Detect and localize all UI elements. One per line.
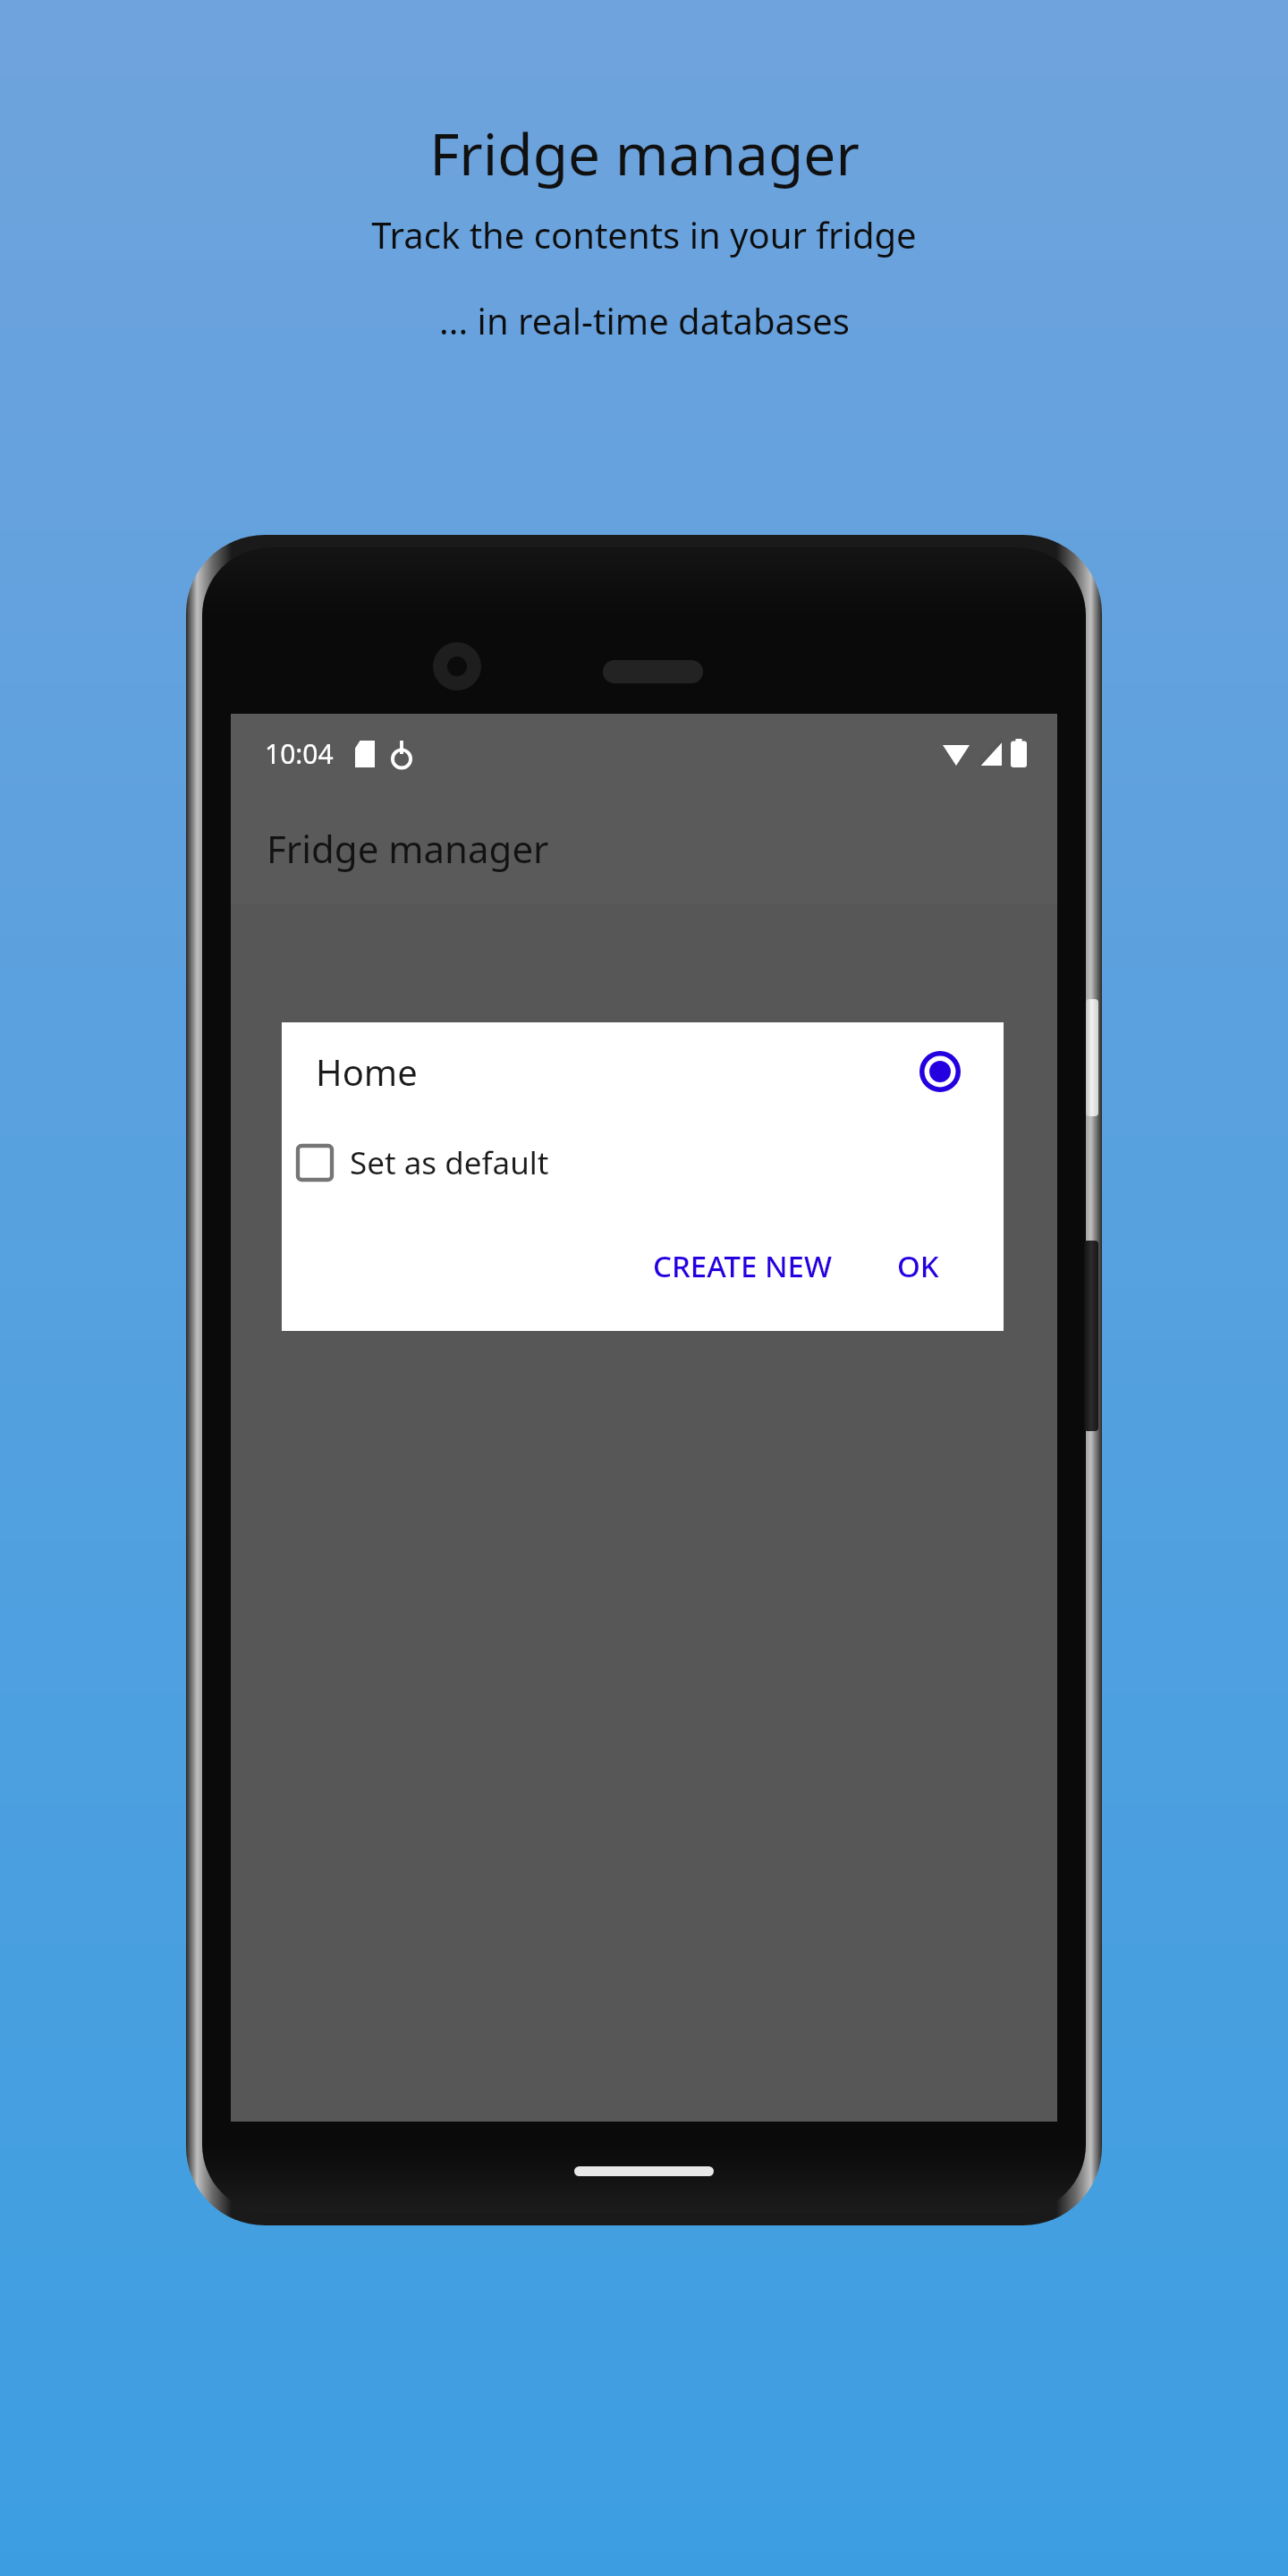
staticText: ... in real-time databases — [439, 296, 850, 344]
staticText: Fridge manager — [267, 823, 549, 874]
staticText: Set as default — [350, 1141, 549, 1184]
staticText: CREATE NEW — [653, 1246, 833, 1286]
staticText: Track the contents in your fridge — [371, 210, 917, 258]
other: Power — [1086, 999, 1098, 1116]
staticText: OK — [897, 1246, 939, 1286]
staticText: Fridge manager — [429, 114, 860, 192]
button[interactable]: Home — [282, 1022, 1004, 1121]
button[interactable]: Set as default — [282, 1131, 567, 1194]
button[interactable]: OK — [885, 1237, 952, 1295]
button[interactable]: CREATE NEW — [640, 1237, 845, 1295]
staticText: 10:04 — [265, 735, 334, 772]
other: Volume — [1084, 1241, 1098, 1431]
staticText: Home — [316, 1047, 418, 1096]
